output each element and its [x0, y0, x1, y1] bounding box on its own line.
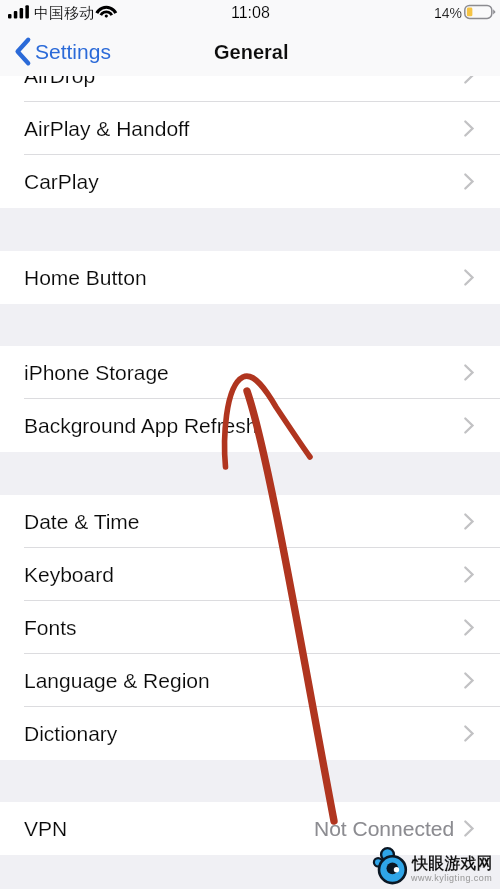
button[interactable]: Back to Settings — [15, 27, 111, 76]
staticText: Fonts — [24, 616, 77, 639]
button[interactable]: Date & Time — [0, 495, 500, 548]
staticText: Keyboard — [24, 563, 114, 586]
button[interactable]: Background App Refresh — [0, 399, 500, 452]
button[interactable]: Language & Region — [0, 654, 500, 707]
staticText: Not Connected — [314, 817, 455, 840]
staticText: General — [214, 41, 289, 63]
staticText: 14% — [434, 5, 463, 21]
button[interactable]: VPN — [0, 802, 500, 855]
staticText: Dictionary — [24, 722, 118, 745]
staticText: VPN — [24, 817, 68, 840]
button[interactable]: AirPlay & Handoff — [0, 102, 500, 155]
staticText: Home Button — [24, 266, 147, 289]
staticText: Settings — [35, 40, 111, 63]
button[interactable]: Home Button — [0, 251, 500, 304]
button[interactable]: iPhone Storage — [0, 346, 500, 399]
staticText: iPhone Storage — [24, 361, 169, 384]
staticText: Date & Time — [24, 510, 140, 533]
button[interactable]: AirDrop — [0, 49, 500, 102]
staticText: Language & Region — [24, 669, 210, 692]
staticText: 快眼游戏网 — [412, 854, 492, 874]
staticText: 11:08 — [231, 4, 270, 22]
staticText: AirPlay & Handoff — [24, 117, 190, 140]
staticText: AirDrop — [24, 64, 96, 87]
button[interactable]: CarPlay — [0, 155, 500, 208]
staticText: www.kyligting.com — [411, 873, 493, 883]
button[interactable]: Fonts — [0, 601, 500, 654]
button[interactable]: Keyboard — [0, 548, 500, 601]
button[interactable]: Dictionary — [0, 707, 500, 760]
staticText: CarPlay — [24, 170, 99, 193]
staticText: Background App Refresh — [24, 414, 258, 437]
staticText: 中国移动 — [34, 4, 94, 23]
